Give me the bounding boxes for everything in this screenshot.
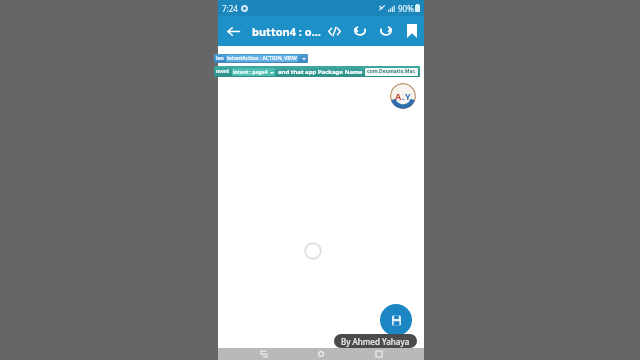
staticText: intentAction : ACTION_VIEW (227, 55, 297, 62)
staticText: and that app Package Name (278, 68, 363, 76)
button[interactable]: Undo (347, 18, 373, 44)
staticText: ion (216, 55, 224, 62)
staticText: By Ahmed Yahaya (341, 336, 410, 347)
staticText: com.Deumatix.MackSaver (367, 68, 416, 76)
staticText: A (395, 90, 402, 102)
button[interactable]: Back (218, 16, 248, 46)
staticText: 90% (398, 3, 414, 14)
button[interactable]: View code (321, 18, 347, 44)
button[interactable]: ment (214, 66, 420, 77)
button[interactable]: Bookmark (399, 18, 424, 44)
button[interactable]: Redo (373, 18, 399, 44)
button[interactable]: Home (308, 348, 334, 360)
button[interactable]: ion (214, 54, 308, 63)
staticText: intent : page4 (233, 69, 268, 76)
button[interactable]: button4 : o... (252, 24, 321, 39)
staticText: 7:24 (222, 3, 238, 14)
button[interactable]: Recents (366, 348, 392, 360)
button[interactable]: Back (250, 348, 276, 360)
staticText: . (402, 90, 405, 102)
button[interactable]: Save project (380, 304, 412, 336)
button[interactable]: A (390, 83, 416, 109)
staticText: Y (405, 90, 411, 102)
staticText: ment (216, 68, 230, 75)
